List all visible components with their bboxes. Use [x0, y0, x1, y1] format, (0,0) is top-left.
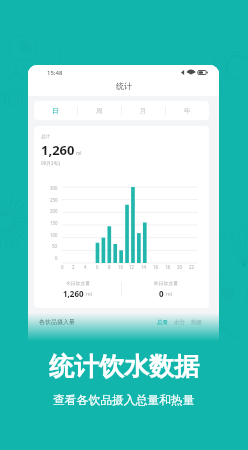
- staticText: 2: [72, 264, 75, 270]
- staticText: 15:48: [47, 69, 63, 77]
- staticText: 昨日饮水量: [154, 280, 178, 286]
- button[interactable]: 日: [34, 101, 77, 120]
- staticText: 150: [50, 220, 58, 226]
- staticText: 0: [61, 264, 64, 270]
- staticText: 50: [52, 243, 58, 249]
- staticText: 16: [153, 264, 159, 270]
- staticText: 今日饮水量: [66, 280, 90, 286]
- staticText: 12: [129, 264, 135, 270]
- staticText: 1,260: [63, 288, 84, 299]
- staticText: 14: [141, 264, 147, 270]
- staticText: 热量: [191, 319, 202, 326]
- staticText: ml: [86, 291, 92, 298]
- staticText: 水分: [174, 319, 185, 326]
- staticText: 10: [118, 264, 124, 270]
- staticText: ml: [166, 291, 172, 298]
- staticText: 各饮品摄入量: [39, 318, 75, 326]
- staticText: 统计饮水数据: [49, 351, 199, 382]
- staticText: 100: [50, 232, 58, 238]
- button[interactable]: 周: [78, 101, 121, 120]
- button[interactable]: 年: [166, 101, 209, 120]
- staticText: 查看各饮品摄入总量和热量: [53, 393, 195, 408]
- staticText: 1,260: [41, 141, 75, 159]
- staticText: 6: [96, 264, 99, 270]
- staticText: 18: [165, 264, 171, 270]
- other: Status icons: [181, 69, 209, 76]
- staticText: 250: [50, 197, 58, 203]
- button[interactable]: 今日饮水量: [34, 280, 121, 299]
- button[interactable]: 昨日饮水量: [122, 280, 209, 299]
- staticText: 年: [184, 107, 191, 115]
- staticText: 0: [159, 288, 164, 299]
- staticText: 日: [52, 107, 59, 115]
- staticText: 4: [84, 264, 87, 270]
- button[interactable]: 总量: [154, 319, 171, 326]
- staticText: 0: [55, 255, 58, 261]
- staticText: 06月24日: [41, 160, 61, 166]
- staticText: 8: [108, 264, 111, 270]
- staticText: 200: [50, 208, 58, 214]
- staticText: 月: [140, 107, 147, 115]
- staticText: 总计: [41, 134, 51, 140]
- staticText: 20: [177, 264, 183, 270]
- button[interactable]: 热量: [188, 319, 205, 326]
- staticText: 22: [189, 264, 195, 270]
- staticText: 总量: [157, 319, 168, 326]
- staticText: 周: [96, 107, 103, 115]
- staticText: 统计: [116, 81, 132, 91]
- staticText: 300: [50, 185, 58, 191]
- button[interactable]: 水分: [171, 319, 188, 326]
- button[interactable]: 月: [122, 101, 165, 120]
- staticText: ml: [76, 150, 82, 156]
